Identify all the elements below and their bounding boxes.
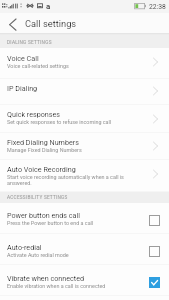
staticText: Voice Call: [7, 54, 39, 62]
staticText: Start voice recording automatically when…: [7, 174, 135, 187]
staticText: Fixed Dialing Numbers: [7, 138, 79, 146]
button[interactable]: Back: [0, 13, 25, 33]
button[interactable]: Auto Voice Recording: [0, 160, 169, 192]
button[interactable]: Vibrate when connected: [0, 265, 169, 296]
staticText: Voice call-related settings: [7, 63, 135, 69]
staticText: Auto-redial: [7, 243, 42, 251]
staticText: Quick responses: [7, 110, 61, 118]
staticText: Call settings: [25, 18, 77, 29]
button[interactable]: Auto-redial: [0, 234, 169, 265]
staticText: Set quick responses to refuse incoming c…: [7, 119, 135, 125]
staticText: Press the Power button to end a call: [7, 220, 135, 226]
button[interactable]: Voice Call: [0, 48, 169, 79]
staticText: 22:38: [149, 3, 166, 11]
staticText: DIALING SETTINGS: [7, 40, 52, 46]
staticText: Enable vibration when a call is connecte…: [7, 283, 135, 289]
button[interactable]: Power button ends call: [0, 203, 169, 234]
staticText: Power button ends call: [7, 211, 80, 219]
button[interactable]: Fixed Dialing Numbers: [0, 133, 169, 160]
staticText: IP Dialing: [7, 84, 38, 92]
staticText: ACCESSIBILITY SETTINGS: [7, 195, 68, 201]
staticText: Auto Voice Recording: [7, 165, 76, 173]
button[interactable]: Quick responses: [0, 105, 169, 133]
staticText: a: [46, 2, 51, 11]
staticText: Vibrate when connected: [7, 274, 85, 282]
button[interactable]: IP Dialing: [0, 79, 169, 105]
staticText: Activate Auto redial mode: [7, 252, 135, 258]
staticText: Manage Fixed Dialing Numbers: [7, 147, 135, 153]
